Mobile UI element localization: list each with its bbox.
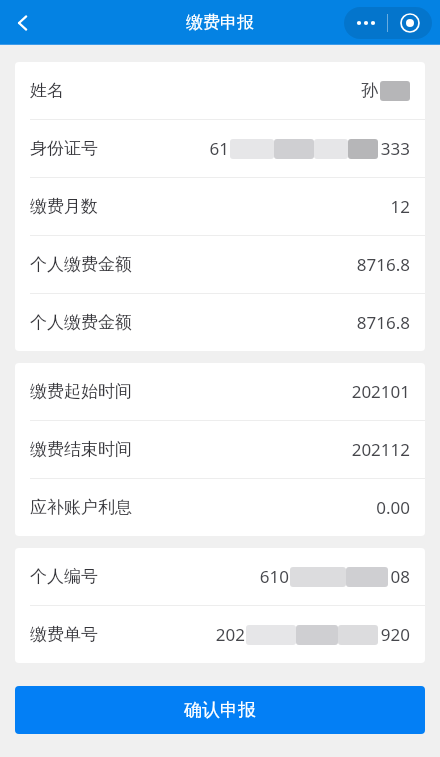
button[interactable]: Close: [388, 7, 432, 39]
staticText: 姓名: [30, 80, 64, 101]
button[interactable]: 缴费结束时间: [15, 421, 425, 478]
staticText: 缴费起始时间: [30, 381, 132, 402]
staticText: 确认申报: [184, 699, 256, 722]
staticText: 身份证号: [30, 138, 98, 159]
staticText: 333: [380, 137, 410, 160]
staticText: 8716.8: [356, 311, 410, 334]
staticText: 202: [215, 623, 245, 646]
button[interactable]: More: [344, 7, 387, 39]
button[interactable]: 个人缴费金额: [15, 294, 425, 351]
staticText: 08: [390, 565, 410, 588]
staticText: 12: [390, 195, 410, 218]
button[interactable]: 姓名: [15, 62, 425, 119]
button[interactable]: Back: [0, 0, 46, 45]
staticText: 个人缴费金额: [30, 312, 132, 333]
staticText: 个人缴费金额: [30, 254, 132, 275]
button[interactable]: 应补账户利息: [15, 479, 425, 536]
staticText: 202101: [351, 380, 410, 403]
staticText: 应补账户利息: [30, 497, 132, 518]
staticText: 个人编号: [30, 566, 98, 587]
button[interactable]: 确认申报: [15, 686, 425, 734]
staticText: 920: [380, 623, 410, 646]
staticText: 0.00: [376, 496, 410, 519]
staticText: 8716.8: [356, 253, 410, 276]
staticText: 61: [209, 137, 229, 160]
staticText: 202112: [351, 438, 410, 461]
staticText: 缴费月数: [30, 196, 98, 217]
staticText: 610: [259, 565, 289, 588]
button[interactable]: 缴费起始时间: [15, 363, 425, 420]
button[interactable]: 个人缴费金额: [15, 236, 425, 293]
button[interactable]: 缴费单号: [15, 606, 425, 663]
staticText: 缴费结束时间: [30, 439, 132, 460]
staticText: 缴费单号: [30, 624, 98, 645]
button[interactable]: 缴费月数: [15, 178, 425, 235]
button[interactable]: 个人编号: [15, 548, 425, 605]
staticText: 孙: [361, 80, 378, 101]
staticText: 缴费申报: [186, 12, 254, 33]
button[interactable]: 身份证号: [15, 120, 425, 177]
